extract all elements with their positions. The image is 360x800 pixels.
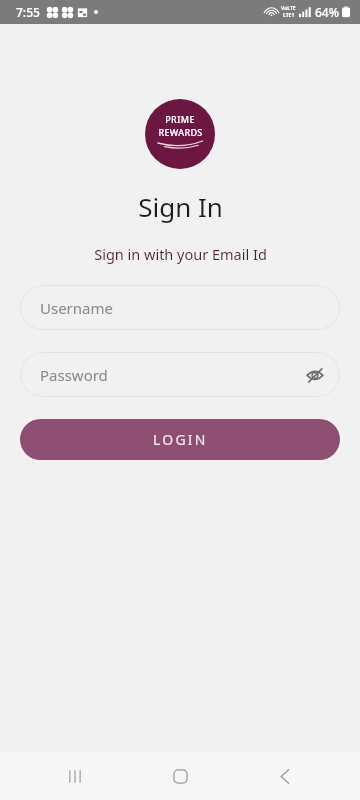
staticText: 64% <box>315 4 339 20</box>
button[interactable]: LOGIN <box>20 419 340 460</box>
staticText: Sign in with your Email Id <box>94 244 267 264</box>
button[interactable]: Home <box>150 752 210 800</box>
button[interactable]: Prime Rewards logo <box>145 99 215 169</box>
staticText: Password <box>40 365 108 385</box>
staticText: LOGIN <box>153 430 208 449</box>
staticText: VoLTE <box>281 5 296 12</box>
button[interactable]: Password <box>20 352 340 397</box>
button[interactable]: Back <box>255 752 315 800</box>
button[interactable]: Show password <box>298 358 332 392</box>
staticText: Sign In <box>138 189 223 224</box>
button[interactable]: Username <box>20 285 340 330</box>
staticText: LTE1 <box>283 12 295 19</box>
button[interactable]: Recents <box>45 752 105 800</box>
staticText: REWARDS <box>158 126 203 138</box>
staticText: PRIME <box>165 113 195 125</box>
staticText: Username <box>40 298 113 318</box>
staticText: 7:55 <box>16 4 40 20</box>
